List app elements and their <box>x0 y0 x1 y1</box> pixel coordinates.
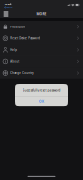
button[interactable]: Change Country <box>0 67 83 79</box>
staticText: MORE <box>36 12 46 16</box>
staticText: About <box>10 60 19 63</box>
staticText: 12:53 <box>4 2 9 6</box>
button[interactable]: Menu <box>0 10 12 18</box>
button[interactable]: Protection <box>0 21 83 32</box>
staticText: Protection <box>10 25 25 28</box>
button[interactable]: OK <box>15 97 68 106</box>
staticText: Reset Device Password <box>10 36 40 40</box>
staticText: OK <box>39 99 44 104</box>
staticText: Help <box>10 48 17 52</box>
button[interactable]: Reset Device Password <box>0 33 83 44</box>
staticText: Search <box>6 6 12 9</box>
staticText: Change Country <box>10 71 33 75</box>
staticText: Successfully reset password <box>22 88 60 92</box>
button[interactable]: About <box>0 56 83 67</box>
button[interactable]: Help <box>0 44 83 55</box>
